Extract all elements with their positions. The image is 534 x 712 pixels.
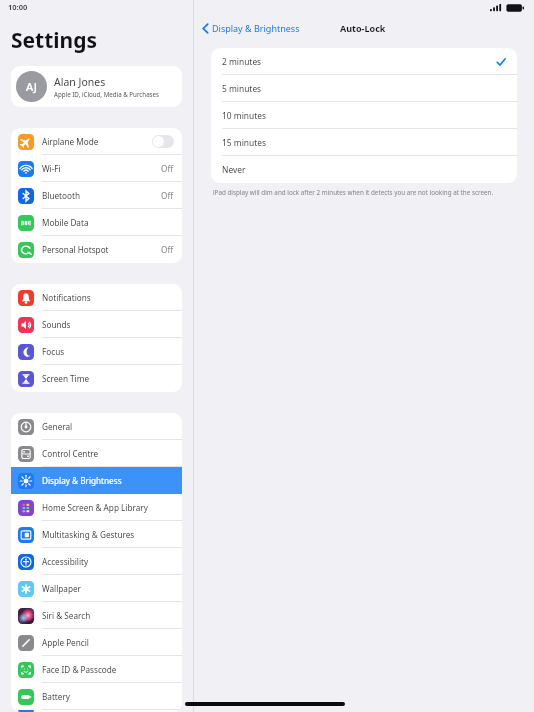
- staticText: 10:00: [8, 2, 28, 12]
- staticText: Apple Pencil: [42, 637, 174, 648]
- staticText: Display & Brightness: [212, 22, 300, 34]
- staticText: 2 minutes: [222, 56, 496, 67]
- staticText: Siri & Search: [42, 610, 174, 621]
- staticText: 15 minutes: [222, 137, 506, 148]
- staticText: iPad display will dim and lock after 2 m…: [213, 188, 494, 197]
- staticText: Wi-Fi: [42, 163, 161, 174]
- button[interactable]: Privacy & Security: [11, 710, 182, 712]
- staticText: Face ID & Passcode: [42, 664, 174, 675]
- button[interactable]: Display & Brightness: [11, 467, 182, 494]
- staticText: Battery: [42, 691, 174, 702]
- staticText: AJ: [26, 79, 37, 94]
- button[interactable]: Focus: [11, 338, 182, 365]
- staticText: Auto-Lock: [340, 22, 386, 34]
- button[interactable]: Airplane Mode toggle: [152, 135, 174, 148]
- button[interactable]: Control Centre: [11, 440, 182, 467]
- button[interactable]: Screen Time: [11, 365, 182, 392]
- button[interactable]: Bluetooth: [11, 182, 182, 209]
- button[interactable]: Battery: [11, 683, 182, 710]
- staticText: Settings: [11, 26, 98, 55]
- button[interactable]: Apple Pencil: [11, 629, 182, 656]
- staticText: Alan Jones: [54, 75, 106, 89]
- button[interactable]: Home Screen & App Library: [11, 494, 182, 521]
- staticText: Sounds: [42, 319, 174, 330]
- button[interactable]: 15 minutes: [211, 129, 517, 156]
- staticText: Personal Hotspot: [42, 244, 161, 255]
- button[interactable]: Notifications: [11, 284, 182, 311]
- button[interactable]: Sounds: [11, 311, 182, 338]
- staticText: General: [42, 421, 174, 432]
- staticText: Notifications: [42, 292, 174, 303]
- staticText: Screen Time: [42, 373, 174, 384]
- staticText: 10 minutes: [222, 110, 506, 121]
- button[interactable]: Face ID & Passcode: [11, 656, 182, 683]
- staticText: Accessibility: [42, 556, 174, 567]
- button[interactable]: Multitasking & Gestures: [11, 521, 182, 548]
- button[interactable]: Personal Hotspot: [11, 236, 182, 263]
- staticText: Bluetooth: [42, 190, 161, 201]
- staticText: 5 minutes: [222, 83, 506, 94]
- button[interactable]: Airplane Mode: [11, 128, 182, 155]
- button[interactable]: Siri & Search: [11, 602, 182, 629]
- button[interactable]: 10 minutes: [211, 102, 517, 129]
- button[interactable]: Mobile Data: [11, 209, 182, 236]
- button[interactable]: 5 minutes: [211, 75, 517, 102]
- staticText: Off: [161, 190, 174, 201]
- staticText: Focus: [42, 346, 174, 357]
- button[interactable]: Wi-Fi: [11, 155, 182, 182]
- button[interactable]: General: [11, 413, 182, 440]
- staticText: Control Centre: [42, 448, 174, 459]
- staticText: Wallpaper: [42, 583, 174, 594]
- staticText: Display & Brightness: [42, 475, 174, 486]
- staticText: Mobile Data: [42, 217, 174, 228]
- button[interactable]: Never: [211, 156, 517, 183]
- staticText: Off: [161, 163, 174, 174]
- staticText: Home Screen & App Library: [42, 502, 174, 513]
- staticText: Airplane Mode: [42, 136, 152, 147]
- button[interactable]: Display & Brightness: [200, 20, 302, 36]
- button[interactable]: 2 minutes: [211, 48, 517, 75]
- button[interactable]: Accessibility: [11, 548, 182, 575]
- staticText: Off: [161, 244, 174, 255]
- button[interactable]: AJ: [11, 66, 182, 107]
- staticText: Never: [222, 164, 506, 175]
- staticText: Multitasking & Gestures: [42, 529, 174, 540]
- staticText: Apple ID, iCloud, Media & Purchases: [54, 90, 160, 98]
- button[interactable]: Wallpaper: [11, 575, 182, 602]
